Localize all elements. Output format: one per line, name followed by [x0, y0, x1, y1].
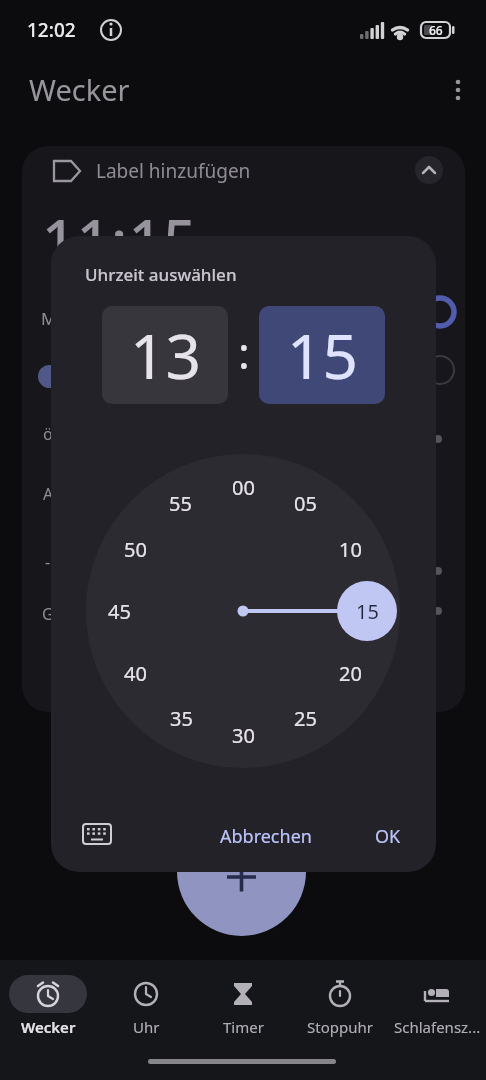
staticText: OK [375, 824, 401, 849]
staticText: Uhrzeit auswählen [85, 263, 237, 286]
staticText: G [42, 603, 54, 625]
button[interactable]: Abbrechen [216, 819, 316, 853]
button[interactable] [30, 152, 330, 190]
staticText: Wecker [21, 1017, 76, 1037]
staticText: : [238, 322, 250, 382]
staticText: 50 [124, 536, 147, 563]
staticText: 10 [339, 536, 362, 563]
button[interactable]: 15 [259, 306, 385, 404]
button[interactable] [75, 814, 119, 854]
button[interactable]: 13 [102, 306, 228, 404]
staticText: Wecker [29, 70, 130, 109]
button[interactable]: OK [363, 819, 413, 853]
button[interactable] [0, 962, 96, 1042]
staticText: 15 [356, 598, 379, 625]
button[interactable] [195, 962, 291, 1042]
staticText: 25 [294, 705, 317, 732]
button[interactable] [177, 807, 306, 936]
staticText: - [45, 551, 51, 573]
button[interactable] [389, 962, 485, 1042]
staticText: 66 [429, 22, 443, 38]
button[interactable] [415, 156, 443, 184]
staticText: A [43, 483, 54, 505]
staticText: 11:15 [42, 200, 198, 270]
staticText: 12:02 [27, 17, 76, 43]
staticText: 00 [232, 474, 255, 501]
staticText: Uhr [133, 1017, 160, 1037]
staticText: 20 [339, 660, 362, 687]
staticText: 13 [130, 313, 201, 397]
staticText: 30 [232, 722, 255, 749]
staticText: 35 [170, 705, 193, 732]
staticText: M [41, 307, 57, 330]
staticText: Label hinzufügen [96, 158, 251, 184]
staticText: Stoppuhr [307, 1017, 373, 1037]
button[interactable] [292, 962, 388, 1042]
staticText: 45 [108, 598, 131, 625]
staticText: 40 [124, 660, 147, 687]
staticText: 55 [169, 490, 192, 517]
staticText: 15 [287, 313, 358, 397]
button[interactable] [440, 72, 476, 108]
staticText: Abbrechen [220, 824, 312, 849]
staticText: 05 [294, 490, 317, 517]
staticText: ö [43, 423, 53, 445]
button[interactable] [98, 962, 194, 1042]
staticText: Timer [223, 1017, 264, 1037]
staticText: Schlafensz... [394, 1017, 481, 1037]
